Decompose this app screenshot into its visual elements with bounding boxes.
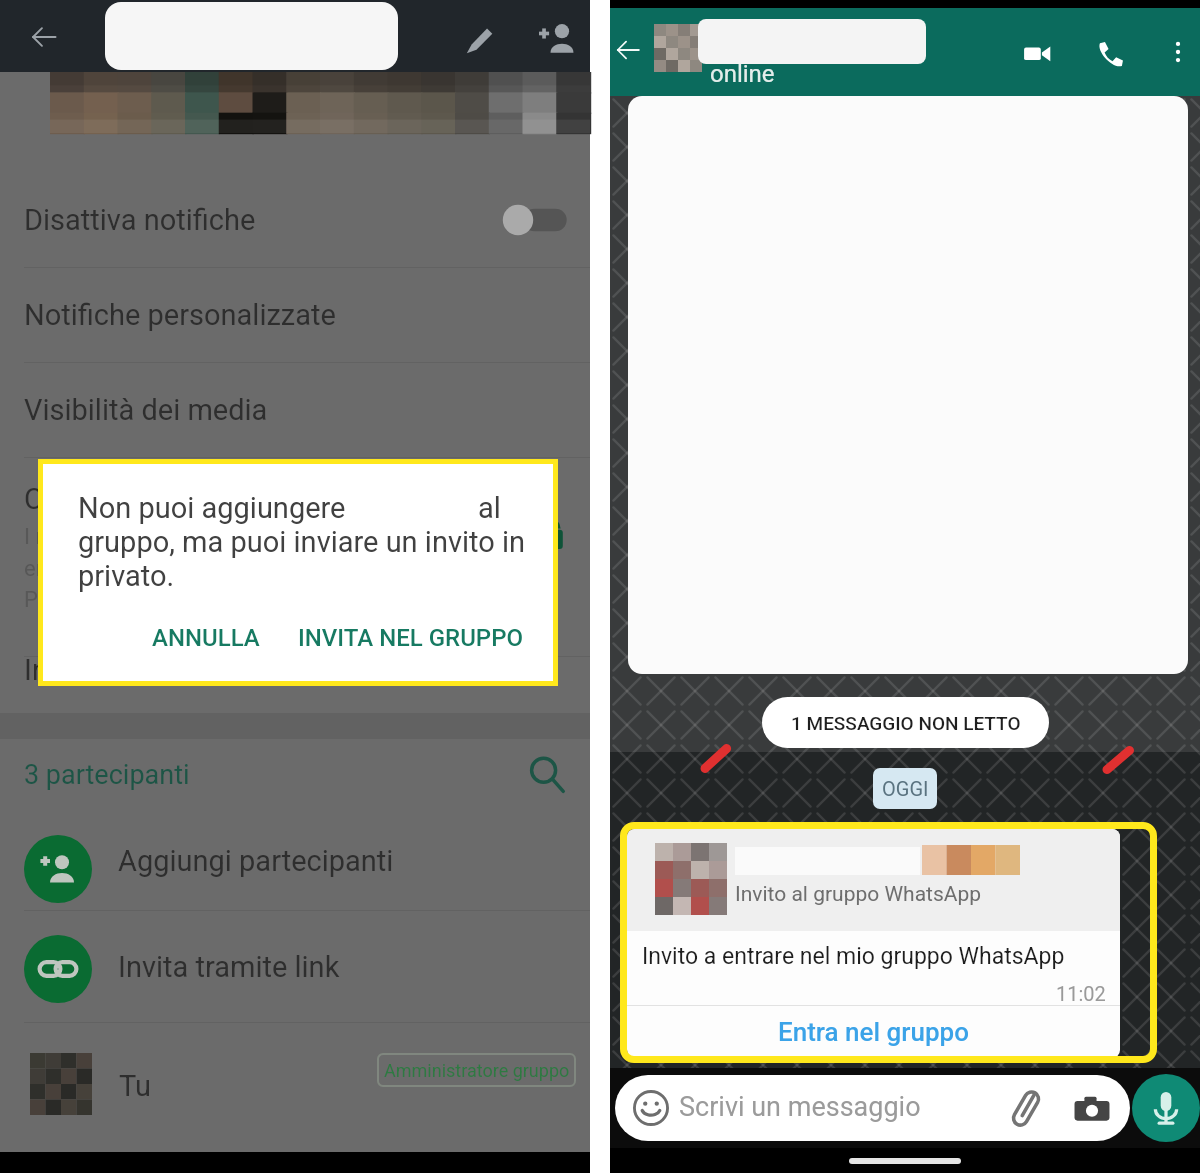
button[interactable]: Crittografia <box>0 458 590 656</box>
staticText: OGGI <box>882 777 929 800</box>
staticText: Visibilità dei media <box>24 393 268 427</box>
button[interactable]: Attach <box>1005 1088 1047 1130</box>
staticText: Invito al gruppo WhatsApp <box>735 882 982 907</box>
button[interactable]: Invia segnalazione <box>0 657 590 713</box>
button[interactable]: Entra nel gruppo <box>627 1006 1120 1058</box>
staticText: 1 MESSAGGIO NON LETTO <box>791 712 1021 734</box>
button[interactable]: Record voice message <box>1132 1074 1200 1142</box>
staticText: Invita tramite link <box>118 950 340 984</box>
button[interactable]: Camera <box>1073 1091 1111 1129</box>
button[interactable]: Search participants <box>522 751 570 799</box>
staticText: online <box>710 60 775 88</box>
staticText: Scrivi un messaggio <box>679 1091 921 1123</box>
staticText: Non puoi aggiungere <box>78 491 346 525</box>
staticText: Crittografia <box>24 482 169 516</box>
button[interactable]: Notifiche personalizzate <box>0 268 590 362</box>
staticText: Notifiche personalizzate <box>24 298 336 332</box>
button[interactable]: ANNULLA <box>138 614 274 662</box>
staticText: 11:02 <box>1056 982 1106 1005</box>
button[interactable]: Video call <box>1018 35 1056 73</box>
button[interactable]: Tu <box>0 1023 590 1152</box>
staticText: I messaggi sono protetti con la crittogr… <box>24 524 438 612</box>
staticText: 3 partecipanti <box>24 759 190 791</box>
button[interactable]: Back <box>612 34 644 66</box>
button[interactable]: Voice call <box>1092 36 1128 72</box>
button[interactable]: More options <box>1163 37 1193 67</box>
staticText: gruppo, ma puoi inviare un invito in <box>78 525 525 559</box>
staticText: INVITA NEL GRUPPO <box>298 624 524 652</box>
button[interactable]: Invita tramite link <box>0 911 590 1022</box>
staticText: privato. <box>78 559 175 593</box>
button[interactable]: Scrivi un messaggio <box>615 1075 1130 1141</box>
staticText: Tu <box>119 1069 151 1103</box>
button[interactable]: Visibilità dei media <box>0 363 590 457</box>
button[interactable]: Disattiva notifiche <box>0 173 590 267</box>
button[interactable]: Aggiungi partecipanti <box>0 811 590 910</box>
staticText: Disattiva notifiche <box>24 203 256 237</box>
staticText: ANNULLA <box>152 624 260 652</box>
staticText: Aggiungi partecipanti <box>118 844 394 878</box>
staticText: Invia segnalazione <box>24 653 263 687</box>
button[interactable]: Add participant <box>533 16 579 62</box>
staticText: al <box>478 491 501 525</box>
button[interactable]: INVITA NEL GRUPPO <box>284 614 538 662</box>
button[interactable]: Back <box>27 20 61 54</box>
staticText: Entra nel gruppo <box>778 1017 969 1047</box>
button[interactable]: Edit group name <box>458 18 502 62</box>
staticText: Amministratore gruppo <box>384 1060 570 1081</box>
staticText: Invito a entrare nel mio gruppo WhatsApp <box>642 943 1065 970</box>
